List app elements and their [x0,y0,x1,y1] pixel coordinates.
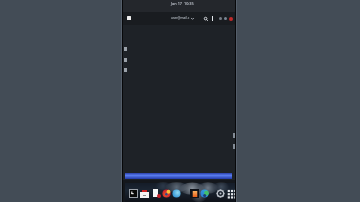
button[interactable]: Browser [172,189,181,198]
button[interactable]: All apps [227,189,236,198]
button[interactable]: Settings [216,189,225,198]
button[interactable]: Minimize [217,15,224,22]
button[interactable]: Mail [140,189,149,198]
button[interactable]: Firefox [162,189,171,198]
button[interactable]: Application [190,189,199,198]
button[interactable]: Close [227,15,234,22]
button[interactable]: Edge browser [200,189,209,198]
button[interactable]: user@mail.c [171,16,194,20]
button[interactable]: Document [152,189,161,198]
button[interactable]: Terminal [129,189,138,198]
button[interactable]: Maximize [222,15,229,22]
button[interactable]: Search [202,15,209,22]
button[interactable]: App icon [127,16,131,20]
staticText: Jan 17 10:35 [171,1,194,6]
staticText: user@mail.c [171,16,190,20]
button[interactable]: More options [209,15,216,22]
